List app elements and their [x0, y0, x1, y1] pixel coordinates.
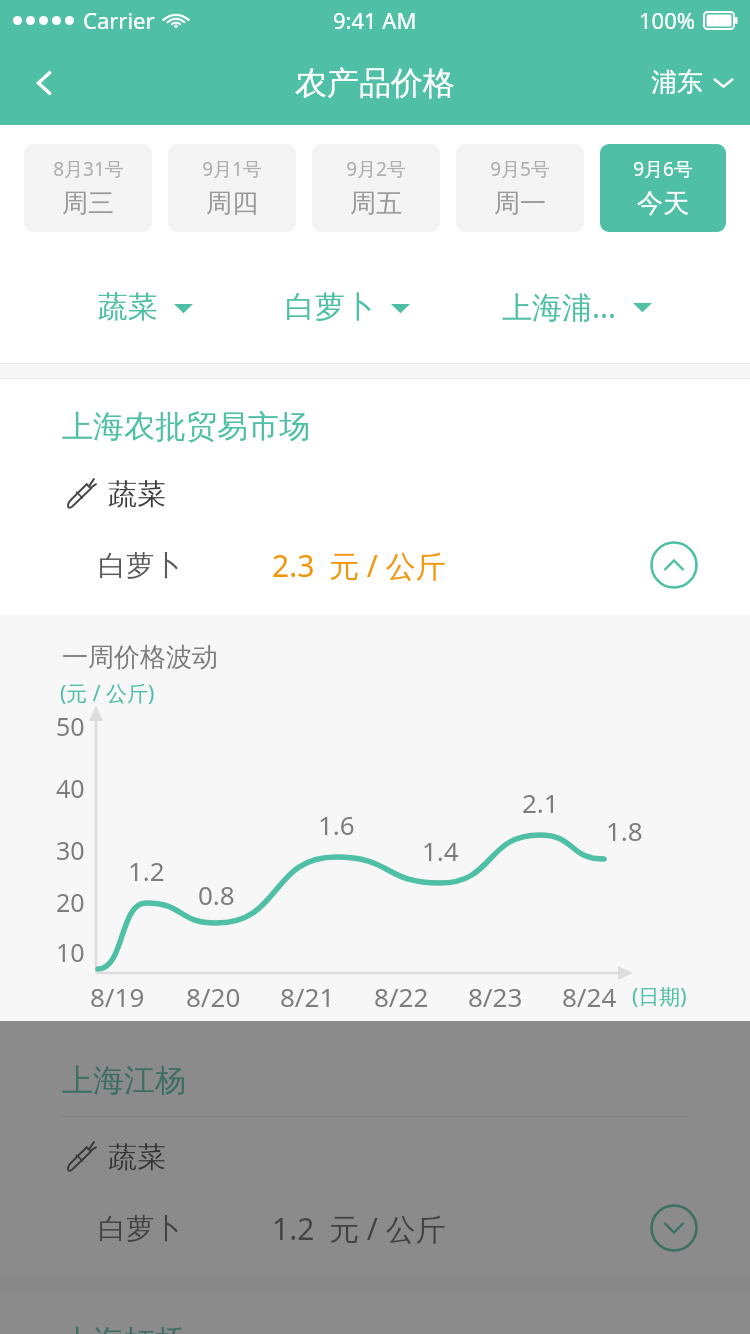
button[interactable]: 蔬菜	[90, 278, 201, 336]
staticText: 白萝卜	[98, 1211, 182, 1246]
staticText: 蔬菜	[108, 1139, 166, 1176]
staticText: Carrier	[83, 5, 155, 35]
staticText: 1.4	[422, 833, 459, 868]
staticText: 农产品价格	[295, 63, 455, 103]
button[interactable]: 8月31号	[24, 144, 152, 232]
staticText: 浦东	[651, 66, 703, 99]
staticText: 8/23	[468, 979, 523, 1014]
staticText: 1.2	[272, 1208, 315, 1249]
staticText: 2.3	[272, 545, 315, 586]
button[interactable]: 9月6号	[600, 144, 726, 232]
staticText: 30	[56, 833, 85, 867]
staticText: 蔬菜	[98, 288, 158, 326]
staticText: 1.6	[318, 807, 355, 842]
staticText: 0.8	[198, 877, 235, 912]
staticText: 上海虹桥	[62, 1322, 186, 1334]
staticText: 9月2号	[346, 156, 406, 182]
button[interactable]: Expand	[650, 1204, 698, 1252]
staticText: 8/19	[90, 979, 145, 1014]
staticText: 8月31号	[53, 156, 124, 182]
staticText: 周四	[206, 187, 258, 220]
button[interactable]: 浦东	[651, 56, 734, 109]
button[interactable]: 上海浦...	[494, 276, 660, 337]
staticText: 元 / 公斤	[329, 1208, 446, 1249]
button[interactable]: 9月5号	[456, 144, 584, 232]
staticText: 50	[56, 709, 85, 743]
staticText: 8/22	[374, 979, 429, 1014]
staticText: 白萝卜	[285, 288, 375, 326]
staticText: 1.2	[128, 853, 165, 888]
staticText: 上海农批贸易市场	[62, 407, 310, 446]
staticText: 上海江杨	[62, 1061, 186, 1100]
staticText: 周一	[494, 187, 546, 220]
staticText: 1.8	[606, 813, 643, 848]
staticText: 20	[56, 885, 85, 919]
staticText: 8/21	[280, 979, 335, 1014]
staticText: 9月5号	[490, 156, 550, 182]
staticText: 周三	[62, 187, 114, 220]
staticText: 蔬菜	[108, 476, 166, 513]
staticText: 一周价格波动	[62, 641, 218, 674]
staticText: 9月6号	[633, 156, 693, 182]
staticText: 8/24	[562, 979, 617, 1014]
button[interactable]: Collapse	[650, 541, 698, 589]
button[interactable]: 9月2号	[312, 144, 440, 232]
staticText: 100%	[639, 5, 696, 35]
staticText: 上海浦...	[502, 286, 617, 327]
staticText: (元 / 公斤)	[60, 679, 155, 708]
staticText: 9:41 AM	[333, 5, 417, 35]
button[interactable]: 9月1号	[168, 144, 296, 232]
staticText: 今天	[637, 187, 689, 220]
staticText: 2.1	[522, 785, 559, 820]
staticText: 元 / 公斤	[329, 545, 446, 586]
staticText: 9月1号	[202, 156, 262, 182]
staticText: 8/20	[186, 979, 241, 1014]
button[interactable]: 白萝卜	[277, 278, 418, 336]
staticText: (日期)	[632, 982, 687, 1011]
staticText: 10	[56, 935, 85, 969]
staticText: 周五	[350, 187, 402, 220]
staticText: 40	[56, 771, 85, 805]
staticText: 白萝卜	[98, 548, 182, 583]
button[interactable]: Back	[18, 57, 70, 109]
